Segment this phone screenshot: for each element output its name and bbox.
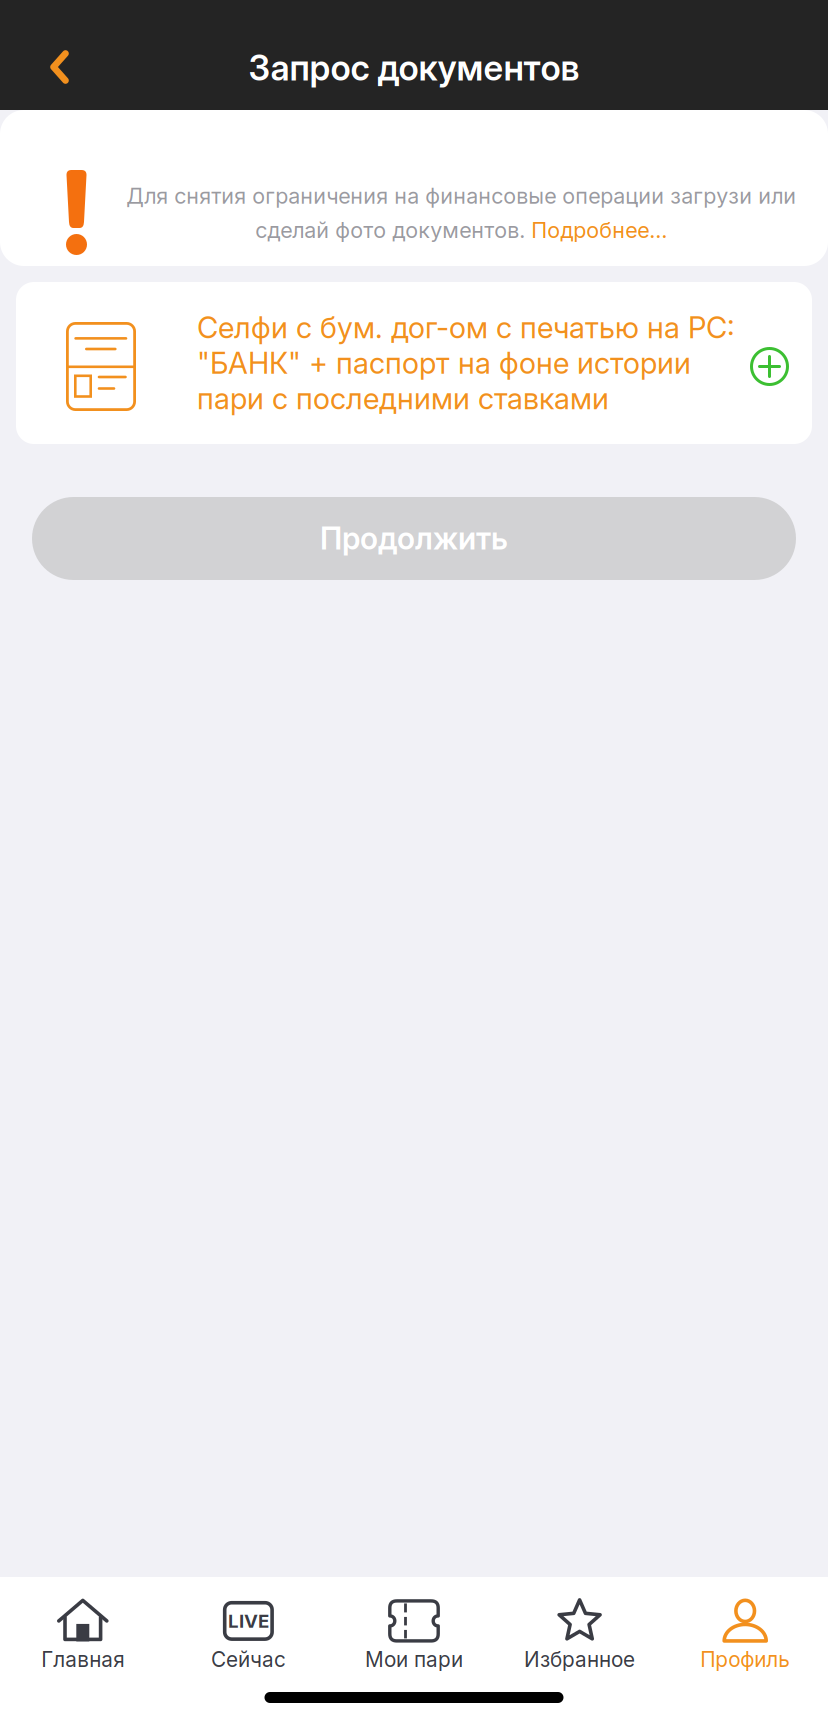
staticText: Запрос документов <box>248 47 579 89</box>
staticText: Сейчас <box>211 1647 286 1672</box>
staticText: Главная <box>41 1647 124 1672</box>
button[interactable]: Селфи с бум. дог-ом с печатью на РС: "БА… <box>0 266 828 444</box>
button[interactable]: LIVE <box>166 1587 331 1683</box>
staticText: LIVE <box>228 1610 269 1632</box>
button[interactable]: Главная <box>0 1587 166 1683</box>
button[interactable]: Продолжить <box>0 444 828 580</box>
staticText: Продолжить <box>320 520 508 557</box>
staticText: Мои пари <box>365 1647 463 1672</box>
button[interactable]: Профиль <box>662 1587 828 1683</box>
staticText: Селфи с бум. дог-ом с печатью на РС: "БА… <box>197 310 735 416</box>
button[interactable]: Избранное <box>497 1587 662 1683</box>
staticText: Избранное <box>524 1647 635 1672</box>
staticText: Профиль <box>700 1647 790 1672</box>
button[interactable]: Назад <box>0 0 119 122</box>
button[interactable]: Мои пари <box>331 1587 497 1683</box>
staticText: Для снятия ограничения на финансовые опе… <box>126 183 796 243</box>
